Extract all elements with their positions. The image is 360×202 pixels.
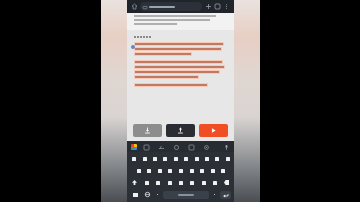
button[interactable] — [165, 166, 174, 175]
button[interactable] — [197, 166, 206, 175]
button[interactable] — [144, 166, 153, 175]
button[interactable] — [150, 154, 159, 163]
button[interactable]: Settings — [202, 143, 210, 151]
button[interactable]: Emoji — [172, 143, 180, 151]
button[interactable]: Comma — [154, 191, 161, 198]
button[interactable]: Theme — [187, 143, 195, 151]
button[interactable] — [142, 178, 151, 187]
button[interactable] — [134, 166, 143, 175]
button[interactable]: Backspace — [222, 178, 231, 187]
button[interactable] — [199, 178, 208, 187]
button[interactable] — [187, 178, 196, 187]
button[interactable] — [176, 166, 185, 175]
button[interactable] — [208, 166, 217, 175]
button[interactable] — [202, 154, 211, 163]
button[interactable] — [176, 178, 185, 187]
button[interactable]: Voice input — [222, 143, 230, 151]
button[interactable]: Symbols — [130, 190, 141, 199]
button[interactable]: Translate — [157, 143, 165, 151]
button[interactable]: Play — [199, 124, 228, 137]
button[interactable] — [171, 154, 180, 163]
button[interactable]: Gboard settings — [131, 144, 137, 150]
button[interactable] — [140, 154, 149, 163]
button[interactable]: Tabs — [213, 2, 222, 11]
button[interactable] — [212, 154, 221, 163]
button[interactable]: Home — [130, 2, 139, 11]
button[interactable] — [160, 154, 169, 163]
button[interactable]: Space — [163, 191, 209, 199]
button[interactable] — [187, 166, 196, 175]
button[interactable]: Enter — [220, 191, 231, 199]
button[interactable]: Upload — [166, 124, 195, 137]
button[interactable]: Clipboard — [142, 143, 150, 151]
button[interactable] — [181, 154, 190, 163]
button[interactable]: More options — [222, 2, 231, 11]
button[interactable] — [153, 178, 162, 187]
button[interactable] — [218, 166, 227, 175]
button[interactable] — [210, 178, 219, 187]
button[interactable]: Change language — [143, 190, 152, 199]
button[interactable] — [155, 166, 164, 175]
button[interactable]: Period — [211, 191, 218, 198]
button[interactable]: Shift — [130, 178, 139, 187]
button[interactable]: Download — [133, 124, 162, 137]
button[interactable]: New tab — [204, 2, 213, 11]
button[interactable] — [165, 178, 174, 187]
button[interactable] — [140, 2, 202, 11]
button[interactable] — [192, 154, 201, 163]
button[interactable] — [129, 154, 138, 163]
button[interactable] — [223, 154, 232, 163]
